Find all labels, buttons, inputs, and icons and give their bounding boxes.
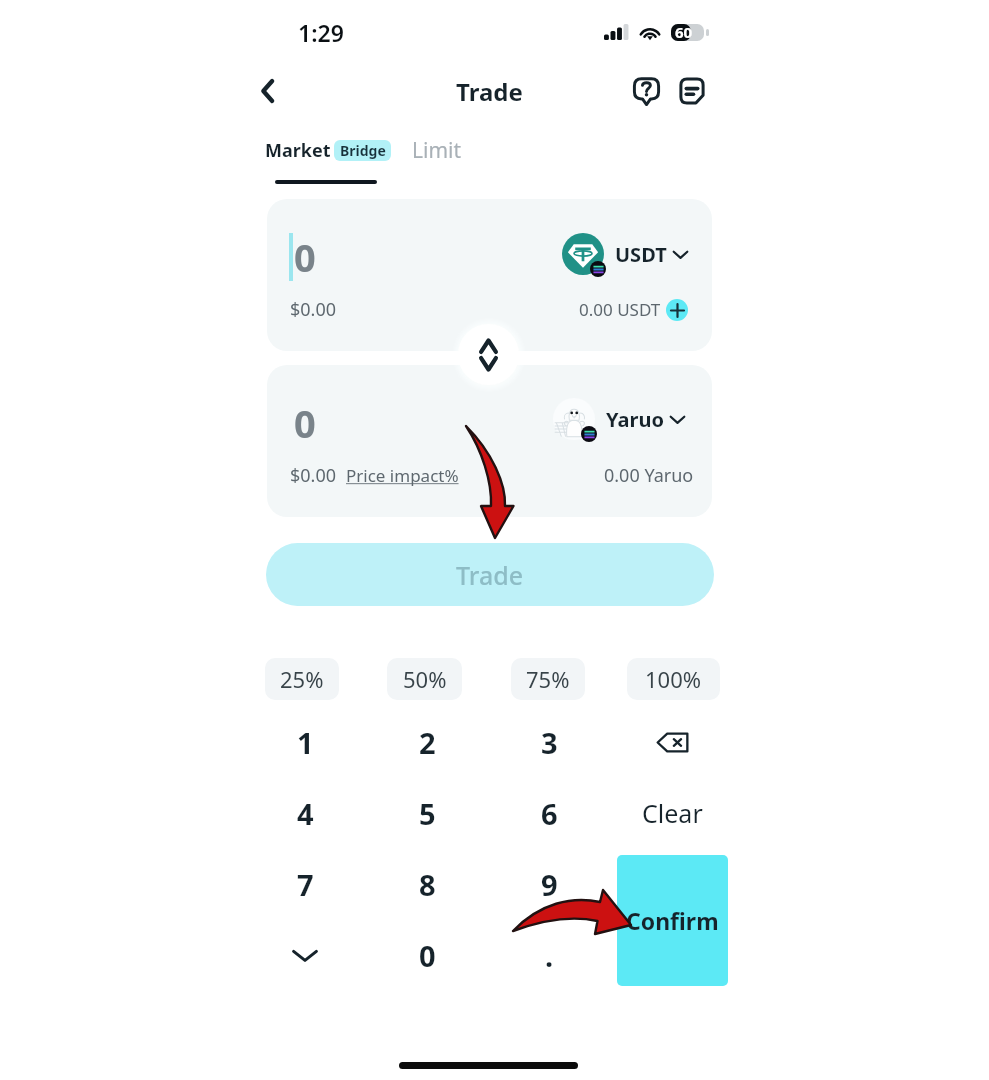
staticText: 6 xyxy=(541,794,558,833)
button[interactable]: 100% xyxy=(627,658,720,700)
button[interactable]: Confirm xyxy=(617,855,728,986)
button[interactable]: 1 xyxy=(250,707,360,777)
staticText: $0.00 xyxy=(290,463,337,488)
button[interactable]: Trade xyxy=(266,543,714,606)
other: Backspace xyxy=(656,726,689,759)
button[interactable]: 2 xyxy=(372,707,482,777)
staticText: Clear xyxy=(642,796,703,830)
staticText: 8 xyxy=(419,865,436,904)
staticText: 9 xyxy=(541,865,558,904)
button[interactable]: Back xyxy=(246,69,290,113)
button[interactable]: Price impact% xyxy=(346,464,459,487)
button[interactable]: Limit xyxy=(412,136,462,165)
button[interactable]: 5 xyxy=(372,778,482,848)
staticText: 0 xyxy=(419,936,436,975)
button[interactable]: . xyxy=(494,920,604,990)
button[interactable]: Clear xyxy=(617,778,727,848)
staticText: 3 xyxy=(541,723,558,762)
button[interactable]: 4 xyxy=(250,778,360,848)
button[interactable]: 75% xyxy=(511,658,585,700)
staticText: USDT xyxy=(615,241,667,268)
staticText: 50% xyxy=(403,664,447,694)
staticText: . xyxy=(545,936,554,975)
button[interactable]: Hide keypad xyxy=(250,920,360,990)
button[interactable]: 0 xyxy=(372,920,482,990)
staticText: 60 xyxy=(675,22,693,42)
staticText: 0.00 Yaruo xyxy=(604,463,694,488)
button[interactable]: 8 xyxy=(372,849,482,919)
button[interactable]: Help xyxy=(624,69,668,113)
staticText: $0.00 xyxy=(290,297,337,322)
staticText: 0 xyxy=(294,397,316,449)
button[interactable]: 0 xyxy=(267,199,712,351)
staticText: Confirm xyxy=(626,905,719,936)
staticText: 5 xyxy=(419,794,436,833)
staticText: 1:29 xyxy=(298,17,344,48)
button[interactable]: 6 xyxy=(494,778,604,848)
staticText: 4 xyxy=(297,794,314,833)
button[interactable]: Yaruo xyxy=(553,398,686,440)
staticText: 100% xyxy=(645,664,702,694)
staticText: Yaruo xyxy=(606,406,664,433)
staticText: 1 xyxy=(297,723,314,762)
button[interactable]: 7 xyxy=(250,849,360,919)
staticText: 75% xyxy=(526,664,570,694)
staticText: Trade xyxy=(456,75,523,108)
staticText: 25% xyxy=(280,664,324,694)
staticText: Bridge xyxy=(340,141,386,160)
button[interactable]: Backspace xyxy=(617,707,727,777)
button[interactable]: Order history xyxy=(670,69,714,113)
staticText: 2 xyxy=(419,723,436,762)
staticText: 0.00 USDT xyxy=(579,298,661,321)
staticText: 0 xyxy=(294,231,316,283)
button[interactable]: 0 xyxy=(267,365,712,517)
staticText: Market xyxy=(265,138,331,163)
other: Hide keypad xyxy=(290,940,320,970)
staticText: Trade xyxy=(456,558,524,592)
button[interactable]: Market xyxy=(265,138,391,163)
button[interactable]: Add funds xyxy=(666,299,688,321)
button[interactable]: Switch tokens xyxy=(458,324,519,385)
button[interactable]: 3 xyxy=(494,707,604,777)
button[interactable]: 50% xyxy=(387,658,462,700)
button[interactable]: USDT xyxy=(562,233,689,275)
button[interactable]: 25% xyxy=(265,658,339,700)
staticText: 7 xyxy=(297,865,314,904)
button[interactable]: 9 xyxy=(494,849,604,919)
